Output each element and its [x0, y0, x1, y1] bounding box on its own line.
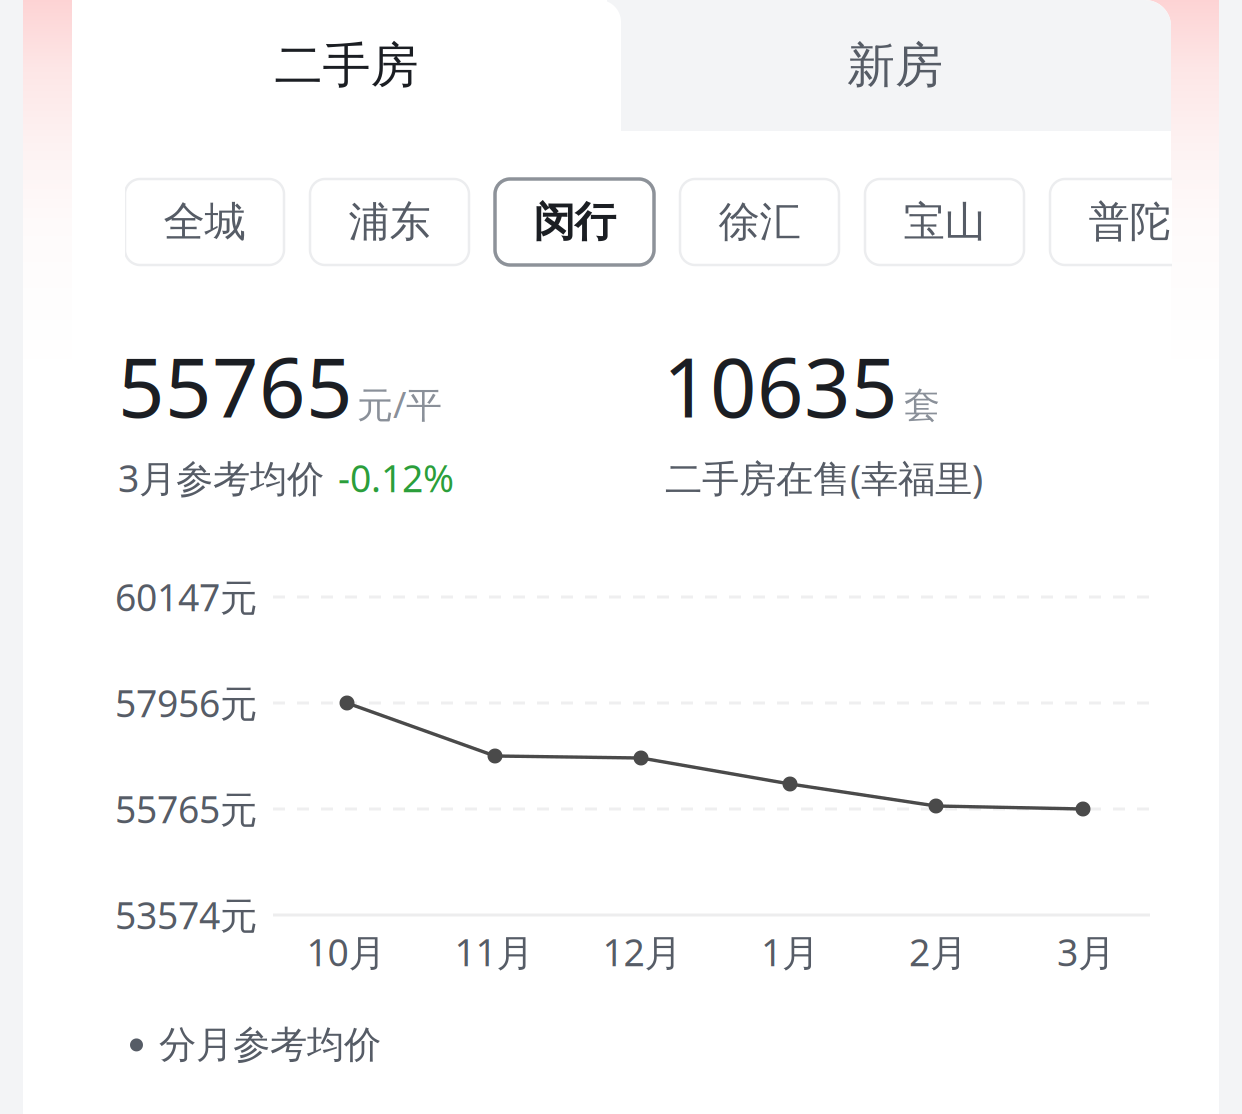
- button[interactable]: 浦东: [310, 179, 469, 265]
- staticText: -0.12%: [338, 453, 454, 503]
- staticText: 55765元: [115, 784, 257, 834]
- button[interactable]: 徐汇: [680, 179, 839, 265]
- staticText: 11月: [454, 927, 533, 977]
- button[interactable]: 新房: [613, 0, 1177, 131]
- button[interactable]: 二手房: [79, 0, 614, 131]
- button[interactable]: 全城: [125, 179, 284, 265]
- staticText: 12月: [602, 927, 681, 977]
- staticText: 10月: [306, 927, 385, 977]
- staticText: 徐汇: [718, 197, 800, 247]
- staticText: 套: [904, 383, 940, 428]
- staticText: 二手房: [274, 36, 418, 95]
- staticText: 浦东: [348, 197, 430, 247]
- staticText: 10635: [663, 332, 898, 440]
- staticText: 3月: [1057, 927, 1115, 977]
- staticText: 57956元: [115, 678, 257, 728]
- staticText: 1月: [761, 927, 819, 977]
- staticText: 3月参考均价: [118, 453, 324, 503]
- staticText: 2月: [909, 927, 967, 977]
- staticText: 55765: [118, 332, 353, 440]
- button[interactable]: 普陀: [1050, 179, 1209, 265]
- staticText: 分月参考均价: [159, 1022, 381, 1068]
- button[interactable]: 闵行: [495, 179, 654, 265]
- staticText: 元/平: [357, 380, 442, 428]
- staticText: 60147元: [115, 572, 257, 622]
- staticText: 新房: [847, 36, 943, 95]
- staticText: 普陀: [1088, 197, 1170, 247]
- staticText: 宝山: [903, 197, 985, 247]
- staticText: 闵行: [533, 197, 615, 247]
- staticText: 二手房在售(幸福里): [665, 453, 983, 503]
- button[interactable]: 宝山: [865, 179, 1024, 265]
- staticText: 53574元: [115, 890, 257, 940]
- staticText: 全城: [163, 197, 245, 247]
